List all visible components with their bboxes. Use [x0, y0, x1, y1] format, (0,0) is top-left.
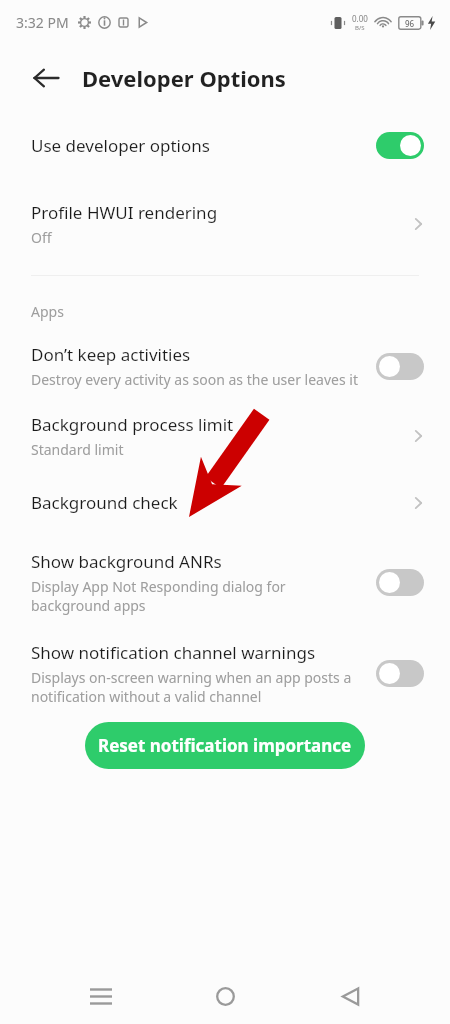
- staticText: 96: [405, 18, 415, 29]
- staticText: Background process limit: [31, 413, 234, 436]
- staticText: 3:32 PM: [16, 13, 69, 32]
- button[interactable]: On: [376, 132, 424, 159]
- staticText: Displays on-screen warning when an app p…: [31, 668, 366, 706]
- staticText: Destroy every activity as soon as the us…: [31, 370, 358, 389]
- button[interactable]: Profile HWUI rendering: [0, 201, 450, 247]
- staticText: Show background ANRs: [31, 550, 222, 573]
- staticText: Profile HWUI rendering: [31, 201, 218, 224]
- staticText: Background check: [31, 491, 178, 514]
- staticText: Reset notification importance: [98, 734, 352, 757]
- staticText: Apps: [31, 302, 64, 321]
- button[interactable]: Back: [28, 60, 64, 96]
- button[interactable]: Home: [201, 972, 249, 1020]
- staticText: Off: [31, 228, 52, 247]
- staticText: Show notification channel warnings: [31, 641, 316, 664]
- button[interactable]: Recent apps: [77, 972, 125, 1020]
- button[interactable]: Don’t keep activities: [0, 343, 450, 389]
- staticText: Use developer options: [31, 134, 210, 157]
- button[interactable]: Off: [376, 569, 424, 596]
- button[interactable]: Use developer options: [0, 132, 450, 159]
- button[interactable]: Off: [376, 353, 424, 380]
- staticText: Don’t keep activities: [31, 343, 191, 366]
- button[interactable]: Back: [326, 972, 374, 1020]
- staticText: 0.00: [352, 13, 368, 24]
- button[interactable]: Show background ANRs: [0, 550, 450, 615]
- staticText: Developer Options: [82, 63, 286, 93]
- button[interactable]: Background process limit: [0, 413, 450, 459]
- staticText: Display App Not Responding dialog for ba…: [31, 577, 366, 615]
- button[interactable]: Reset notification importance: [85, 722, 365, 769]
- button[interactable]: Show notification channel warnings: [0, 641, 450, 706]
- staticText: B/S: [355, 24, 365, 32]
- button[interactable]: Background check: [0, 491, 450, 514]
- staticText: Standard limit: [31, 440, 124, 459]
- button[interactable]: Off: [376, 660, 424, 687]
